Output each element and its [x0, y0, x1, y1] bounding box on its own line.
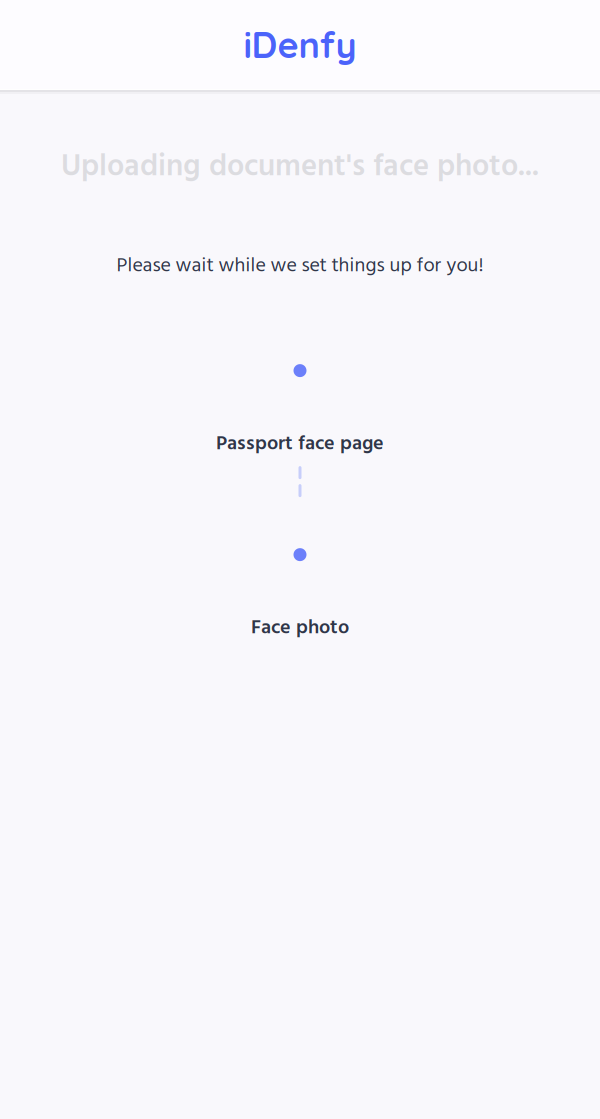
- staticText: Uploading document's face photo...: [61, 143, 539, 192]
- staticText: Face photo: [251, 612, 349, 644]
- staticText: Passport face page: [216, 428, 384, 460]
- staticText: Please wait while we set things up for y…: [116, 250, 483, 282]
- staticText: iDenfy: [243, 22, 356, 67]
